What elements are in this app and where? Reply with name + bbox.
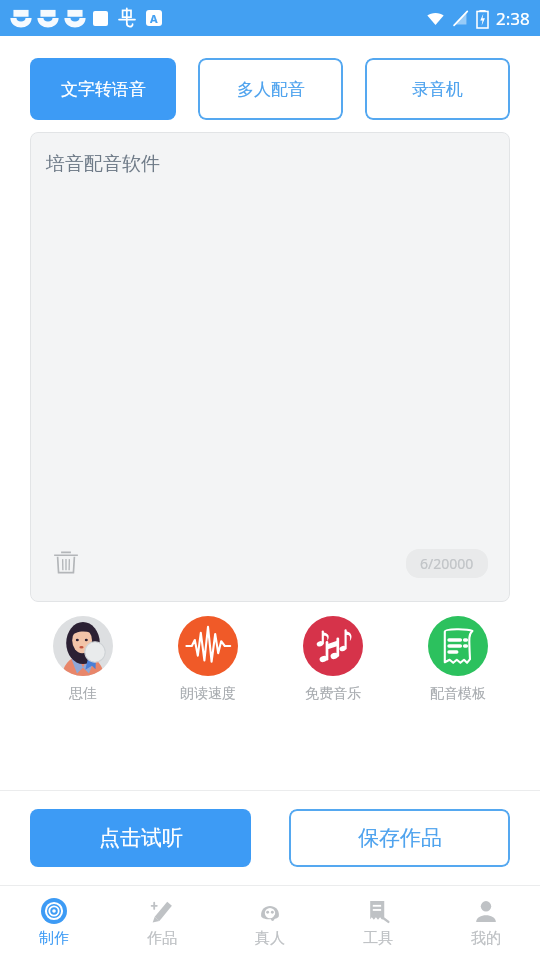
button[interactable]: 免费音乐 [270, 616, 395, 703]
staticText: 制作 [39, 929, 69, 948]
button[interactable]: 制作 [0, 886, 108, 960]
button[interactable]: 点击试听 [30, 809, 251, 867]
button[interactable]: 录音机 [365, 58, 510, 120]
staticText: 多人配音 [237, 79, 305, 100]
button[interactable]: 工具 [324, 886, 432, 960]
button[interactable]: 我的 [432, 886, 540, 960]
button[interactable]: 多人配音 [198, 58, 343, 120]
staticText: 保存作品 [358, 825, 442, 851]
button[interactable]: 真人 [216, 886, 324, 960]
staticText: A [150, 11, 158, 26]
staticText: 我的 [471, 929, 501, 948]
staticText: 配音模板 [430, 685, 486, 703]
button[interactable]: 思佳 [20, 616, 145, 703]
button[interactable]: 作品 [108, 886, 216, 960]
staticText: 录音机 [412, 79, 463, 100]
button[interactable]: Clear text [50, 546, 82, 578]
button[interactable]: 文字转语音 [30, 58, 176, 120]
staticText: 6/20000 [420, 554, 474, 573]
staticText: 2:38 [496, 7, 530, 30]
button[interactable]: 保存作品 [289, 809, 510, 867]
staticText: 培音配音软件 [46, 152, 160, 176]
staticText: 文字转语音 [61, 79, 146, 100]
staticText: 点击试听 [99, 825, 183, 851]
button[interactable]: 配音模板 [395, 616, 520, 703]
button[interactable]: 培音配音软件 [30, 132, 510, 602]
staticText: 真人 [255, 929, 285, 948]
staticText: 朗读速度 [180, 685, 236, 703]
staticText: 工具 [363, 929, 393, 948]
staticText: 作品 [147, 929, 177, 948]
button[interactable]: 朗读速度 [145, 616, 270, 703]
staticText: 思佳 [69, 685, 97, 703]
staticText: 免费音乐 [305, 685, 361, 703]
